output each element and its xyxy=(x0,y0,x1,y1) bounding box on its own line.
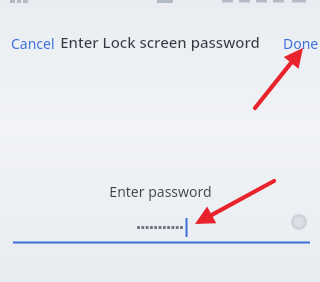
staticText: Cancel xyxy=(11,34,55,53)
button[interactable]: Cancel xyxy=(6,31,60,56)
button[interactable]: Password input field xyxy=(13,212,310,244)
staticText: Done xyxy=(283,34,319,53)
staticText: Enter Lock screen password xyxy=(60,32,260,52)
button[interactable]: Clear password xyxy=(288,211,310,233)
staticText: Enter password xyxy=(109,182,212,201)
button[interactable]: Done xyxy=(279,31,320,56)
